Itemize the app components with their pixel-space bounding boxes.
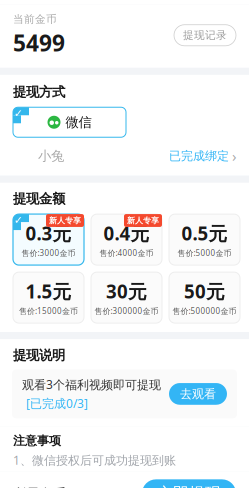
staticText: 5499 [13, 28, 65, 58]
button[interactable]: 去观看 [169, 383, 227, 405]
staticText: 小兔 [38, 148, 64, 164]
staticText: 所需金币: [13, 484, 72, 488]
staticText: 售价:500000金币 [172, 306, 236, 316]
staticText: 已完成绑定 [169, 149, 229, 163]
staticText: 0.3元 [25, 221, 71, 246]
staticText: 售价:4000金币 [99, 248, 153, 258]
staticText: 售价:15000金币 [19, 306, 78, 316]
button[interactable]: 0.3元 [13, 214, 84, 265]
staticText: 去观看 [180, 386, 216, 401]
button[interactable]: 立即提现 [142, 479, 236, 488]
staticText: 0.5元 [181, 221, 227, 246]
staticText: 1、微信授权后可成功提现到账 [13, 452, 176, 468]
staticText: 观看3个福利视频即可提现 [22, 376, 161, 392]
staticText: 1.5元 [25, 279, 71, 304]
button[interactable]: 已完成绑定 [169, 146, 237, 166]
staticText: 50元 [184, 279, 225, 304]
staticText: › [232, 146, 237, 166]
staticText: 提现说明 [13, 347, 65, 363]
staticText: 提现方式 [13, 84, 65, 100]
staticText: 提现金额 [13, 191, 65, 207]
staticText: 立即提现 [157, 483, 221, 488]
staticText: 2、提现申请将在1-3个工作日内审核到账，最快10秒到 [13, 472, 218, 488]
staticText: 微信 [65, 114, 91, 130]
staticText: 注意事项 [13, 433, 61, 448]
button[interactable]: 0.4元 [91, 214, 162, 265]
staticText: 30元 [106, 279, 147, 304]
button[interactable]: 1.5元 [13, 272, 84, 323]
staticText: ✓ [14, 214, 23, 226]
staticText: 售价:5000金币 [177, 248, 231, 258]
staticText: 当前金币 [13, 13, 57, 26]
staticText: [已完成0/3] [26, 395, 88, 411]
staticText: ✓ [14, 107, 23, 119]
staticText: 新人专享 [49, 216, 81, 225]
button[interactable]: 30元 [91, 272, 162, 323]
staticText: 新人专享 [127, 216, 159, 225]
staticText: 售价:300000金币 [94, 306, 158, 316]
button[interactable]: 微信 [13, 107, 126, 137]
button[interactable]: 0.5元 [169, 214, 240, 265]
button[interactable]: 50元 [169, 272, 240, 323]
staticText: 提现记录 [183, 29, 227, 42]
staticText: 售价:3000金币 [21, 248, 75, 258]
button[interactable]: 提现记录 [174, 25, 236, 46]
staticText: 0.4元 [103, 221, 149, 246]
